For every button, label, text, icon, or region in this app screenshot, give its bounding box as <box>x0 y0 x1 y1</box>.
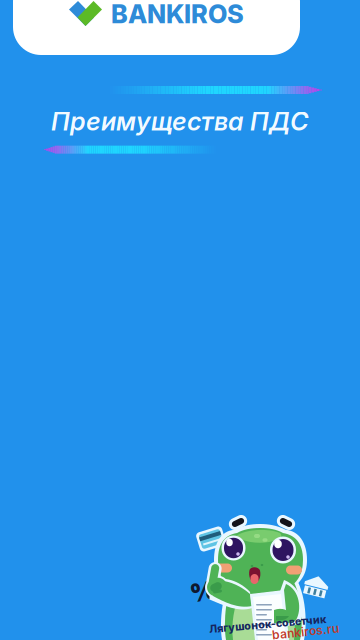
button[interactable]: BANKIROS <box>13 0 300 55</box>
staticText: BANKIROS <box>111 0 244 29</box>
staticText: % <box>190 576 216 607</box>
staticText: bankiros.ru <box>272 625 339 639</box>
staticText: Преимущества ПДС <box>51 106 309 137</box>
staticText: Лягушонок-советчик <box>209 617 326 630</box>
